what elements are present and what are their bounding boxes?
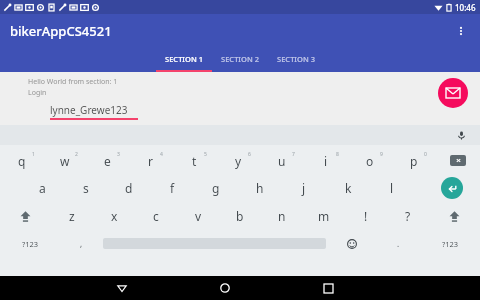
- button[interactable]: Send email: [438, 78, 468, 108]
- staticText: u: [278, 153, 286, 169]
- staticText: r: [148, 153, 153, 169]
- staticText: q: [18, 153, 26, 169]
- button[interactable]: h: [238, 174, 282, 202]
- staticText: 7: [292, 151, 295, 158]
- staticText: o: [366, 153, 374, 169]
- button[interactable]: p: [392, 147, 436, 174]
- staticText: s: [83, 180, 89, 196]
- button[interactable]: SECTION 1: [156, 48, 212, 72]
- button[interactable]: l: [370, 174, 414, 202]
- staticText: i: [324, 153, 328, 169]
- staticText: 6: [248, 151, 251, 158]
- button[interactable]: Shift: [429, 202, 480, 230]
- staticText: y: [235, 153, 242, 169]
- button[interactable]: t: [172, 147, 216, 174]
- staticText: m: [318, 208, 330, 224]
- button[interactable]: ,: [60, 230, 103, 257]
- staticText: SECTION 3: [277, 54, 315, 64]
- button[interactable]: Shift: [0, 202, 51, 230]
- staticText: v: [195, 208, 202, 224]
- button[interactable]: w: [43, 147, 86, 174]
- staticText: .: [397, 238, 400, 249]
- staticText: bikerAppCS4521: [10, 22, 112, 40]
- button[interactable]: Back: [109, 276, 135, 300]
- button[interactable]: Backspace: [436, 147, 480, 174]
- staticText: 4: [160, 151, 163, 158]
- staticText: g: [212, 180, 220, 196]
- button[interactable]: ?123: [0, 230, 60, 257]
- button[interactable]: lynne_Grewe123: [50, 103, 138, 120]
- staticText: z: [69, 208, 75, 224]
- button[interactable]: Recents: [315, 276, 341, 300]
- staticText: f: [170, 180, 175, 196]
- button[interactable]: m: [303, 202, 345, 230]
- button[interactable]: o: [348, 147, 392, 174]
- staticText: 0: [424, 151, 427, 158]
- staticText: 2: [75, 151, 78, 158]
- button[interactable]: u: [260, 147, 304, 174]
- button[interactable]: q: [0, 147, 43, 174]
- button[interactable]: k: [326, 174, 370, 202]
- button[interactable]: g: [194, 174, 238, 202]
- staticText: SECTION 1: [165, 54, 203, 64]
- staticText: ,: [80, 238, 83, 249]
- staticText: p: [410, 153, 418, 169]
- staticText: 10:46: [455, 2, 476, 13]
- button[interactable]: z: [51, 202, 93, 230]
- staticText: b: [236, 208, 244, 224]
- button[interactable]: Emoji: [326, 230, 377, 257]
- staticText: !: [364, 208, 368, 224]
- button[interactable]: Voice input: [452, 126, 470, 144]
- button[interactable]: e: [86, 147, 129, 174]
- staticText: k: [345, 180, 352, 196]
- staticText: 3: [117, 151, 120, 158]
- staticText: l: [390, 180, 394, 196]
- staticText: SECTION 2: [221, 54, 259, 64]
- button[interactable]: Home: [212, 276, 238, 300]
- button[interactable]: ?: [387, 202, 429, 230]
- staticText: d: [125, 180, 133, 196]
- staticText: lynne_Grewe123: [50, 103, 128, 117]
- button[interactable]: d: [107, 174, 150, 202]
- staticText: Hello World from section: 1: [28, 77, 118, 87]
- button[interactable]: f: [150, 174, 194, 202]
- button[interactable]: i: [304, 147, 348, 174]
- button[interactable]: ?123: [420, 230, 480, 257]
- button[interactable]: More options: [448, 18, 474, 44]
- button[interactable]: y: [216, 147, 260, 174]
- button[interactable]: j: [282, 174, 326, 202]
- button[interactable]: s: [64, 174, 107, 202]
- staticText: ?: [405, 208, 411, 224]
- button[interactable]: SECTION 2: [212, 48, 268, 72]
- button[interactable]: b: [219, 202, 261, 230]
- staticText: 1: [32, 151, 35, 158]
- staticText: c: [153, 208, 159, 224]
- staticText: Login: [28, 88, 47, 98]
- staticText: w: [60, 153, 70, 169]
- staticText: e: [104, 153, 111, 169]
- button[interactable]: !: [345, 202, 387, 230]
- button[interactable]: Enter: [441, 177, 463, 199]
- button[interactable]: a: [21, 174, 64, 202]
- staticText: n: [278, 208, 286, 224]
- button[interactable]: c: [135, 202, 177, 230]
- button[interactable]: v: [177, 202, 219, 230]
- button[interactable]: SECTION 3: [268, 48, 324, 72]
- staticText: 9: [380, 151, 383, 158]
- staticText: 8: [336, 151, 339, 158]
- button[interactable]: x: [93, 202, 135, 230]
- staticText: x: [111, 208, 118, 224]
- staticText: t: [192, 153, 197, 169]
- staticText: j: [302, 180, 306, 196]
- staticText: a: [39, 180, 46, 196]
- staticText: h: [256, 180, 264, 196]
- button[interactable]: r: [129, 147, 172, 174]
- staticText: ?123: [22, 239, 39, 249]
- staticText: 5: [204, 151, 207, 158]
- staticText: ?123: [442, 239, 459, 249]
- button[interactable]: n: [261, 202, 303, 230]
